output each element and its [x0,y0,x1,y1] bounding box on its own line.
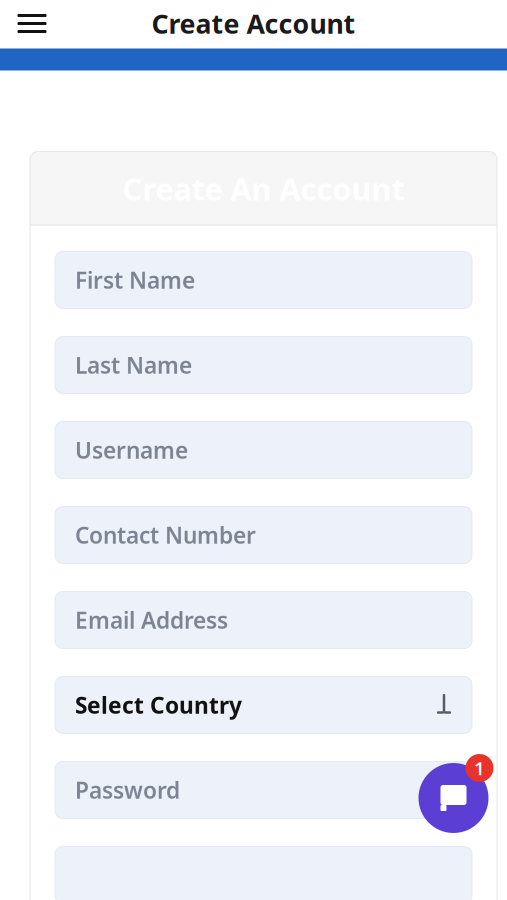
button[interactable]: Open chat, 1 unread message [414,751,498,835]
staticText: Password [75,775,180,805]
staticText: Create Account [151,6,355,41]
button[interactable]: Select Country [55,676,472,733]
staticText: Select Country [75,690,242,720]
staticText: Username [75,435,188,465]
staticText: 1 [474,756,485,780]
staticText: Email Address [75,605,228,635]
staticText: Contact Number [75,520,256,550]
staticText: Create An Account [122,168,404,209]
staticText: First Name [75,265,195,295]
staticText: Last Name [75,350,192,380]
button[interactable]: Menu [8,1,56,45]
